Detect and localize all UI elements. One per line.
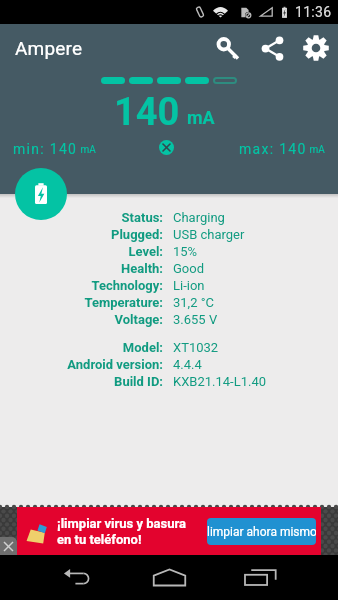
staticText: Status:	[121, 210, 163, 225]
button[interactable]: limpiar ahora mismo	[207, 518, 316, 545]
staticText: Li-ion	[173, 278, 205, 293]
staticText: 31,2 °C	[173, 295, 215, 310]
staticText: Build ID:	[114, 374, 163, 389]
button[interactable]: Back	[32, 555, 124, 600]
staticText: 4.4.4	[173, 357, 202, 372]
button[interactable]: Settings	[294, 26, 338, 70]
staticText: Ampere	[15, 37, 83, 59]
button[interactable]: Share	[250, 26, 294, 70]
button[interactable]: Reset values	[159, 140, 174, 155]
staticText: 140	[114, 90, 180, 135]
staticText: KXB21.14-L1.40	[173, 374, 266, 389]
staticText: Charging	[173, 210, 225, 225]
staticText: Model:	[122, 340, 163, 355]
staticText: mA	[187, 107, 215, 128]
staticText: min: 140	[13, 141, 78, 157]
staticText: Android version:	[67, 357, 163, 372]
staticText: en tu teléfono!	[57, 532, 142, 547]
staticText: Good	[173, 261, 205, 276]
staticText: mA	[307, 144, 325, 156]
staticText: max: 140	[239, 141, 307, 157]
staticText: Level:	[128, 244, 163, 259]
staticText: 15%	[173, 244, 198, 259]
button[interactable]: Battery charging status	[15, 168, 67, 220]
staticText: USB charger	[173, 227, 245, 242]
staticText: 11:36	[295, 4, 332, 20]
staticText: mA	[78, 144, 96, 156]
staticText: Temperature:	[84, 295, 163, 310]
button[interactable]: Recent apps	[215, 555, 306, 600]
staticText: 3.655 V	[173, 312, 218, 327]
staticText: Voltage:	[114, 312, 163, 327]
staticText: XT1032	[173, 340, 219, 355]
staticText: ¡limpiar virus y basura	[57, 516, 187, 531]
button[interactable]: Home	[124, 555, 215, 600]
staticText: Plugged:	[111, 227, 163, 242]
staticText: Technology:	[91, 278, 163, 293]
button[interactable]: Unlock pro	[206, 26, 250, 70]
staticText: limpiar ahora mismo	[207, 525, 316, 539]
button[interactable]: ¡limpiar virus y basura	[17, 507, 321, 555]
button[interactable]: Close ad	[0, 507, 17, 555]
staticText: Health:	[121, 261, 163, 276]
